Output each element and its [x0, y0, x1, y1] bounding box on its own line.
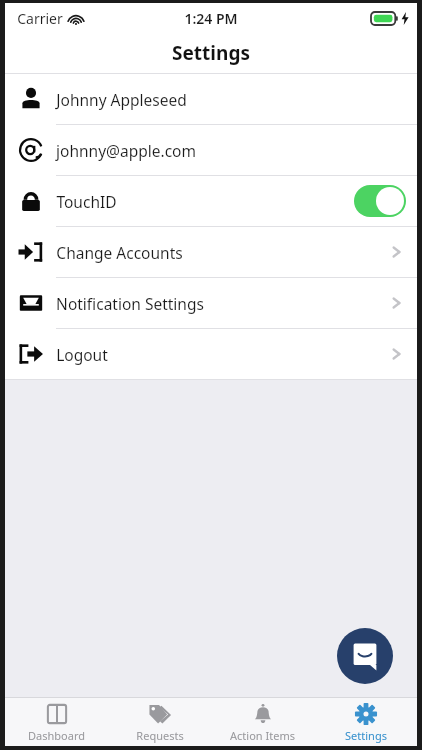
button[interactable]: Requests — [108, 698, 211, 746]
staticText: Carrier — [17, 9, 63, 28]
button[interactable]: Johnny Appleseed — [5, 74, 417, 125]
button[interactable]: TouchID — [5, 176, 417, 227]
button[interactable]: johnny@apple.com — [5, 125, 417, 176]
staticText: Action Items — [230, 728, 295, 743]
staticText: Notification Settings — [56, 293, 204, 314]
button[interactable]: Settings — [314, 698, 417, 746]
staticText: Settings — [345, 728, 387, 743]
button[interactable]: Notification Settings — [5, 278, 417, 329]
staticText: Change Accounts — [56, 242, 183, 263]
button[interactable]: Change Accounts — [5, 227, 417, 278]
button[interactable]: Dashboard — [5, 698, 108, 746]
staticText: Dashboard — [28, 728, 85, 743]
staticText: johnny@apple.com — [56, 140, 196, 161]
button[interactable]: Logout — [5, 329, 417, 379]
staticText: Logout — [56, 344, 108, 365]
button[interactable]: TouchID toggle, on — [354, 185, 406, 217]
staticText: Johnny Appleseed — [56, 89, 187, 110]
staticText: TouchID — [56, 191, 117, 212]
button[interactable]: Open chat support — [337, 628, 393, 684]
button[interactable]: Action Items — [211, 698, 314, 746]
staticText: 1:24 PM — [184, 9, 238, 28]
staticText: Requests — [136, 728, 184, 743]
staticText: Settings — [172, 40, 250, 66]
